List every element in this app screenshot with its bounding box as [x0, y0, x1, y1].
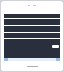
button[interactable]: Action	[52, 45, 59, 48]
